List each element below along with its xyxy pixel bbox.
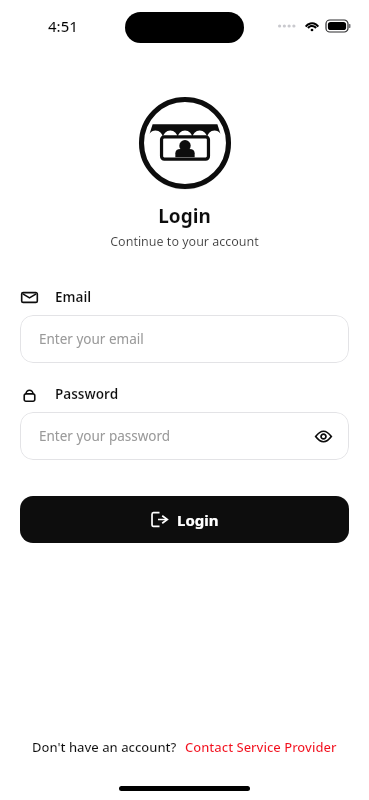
staticText: 4:51: [48, 16, 78, 36]
staticText: Don't have an account?: [32, 738, 177, 756]
button[interactable]: Show password: [311, 424, 335, 448]
button[interactable]: Login: [20, 496, 349, 543]
staticText: Enter your password: [39, 427, 171, 445]
button[interactable]: Contact Service Provider: [185, 738, 337, 756]
button[interactable]: Enter your password: [20, 412, 349, 460]
button[interactable]: Enter your email: [20, 315, 349, 363]
staticText: Login: [0, 203, 369, 229]
staticText: Password: [55, 385, 119, 403]
staticText: Contact Service Provider: [185, 738, 337, 756]
staticText: Login: [177, 510, 219, 530]
staticText: Continue to your account: [0, 233, 369, 250]
staticText: Enter your email: [39, 330, 144, 348]
staticText: Email: [55, 288, 92, 306]
